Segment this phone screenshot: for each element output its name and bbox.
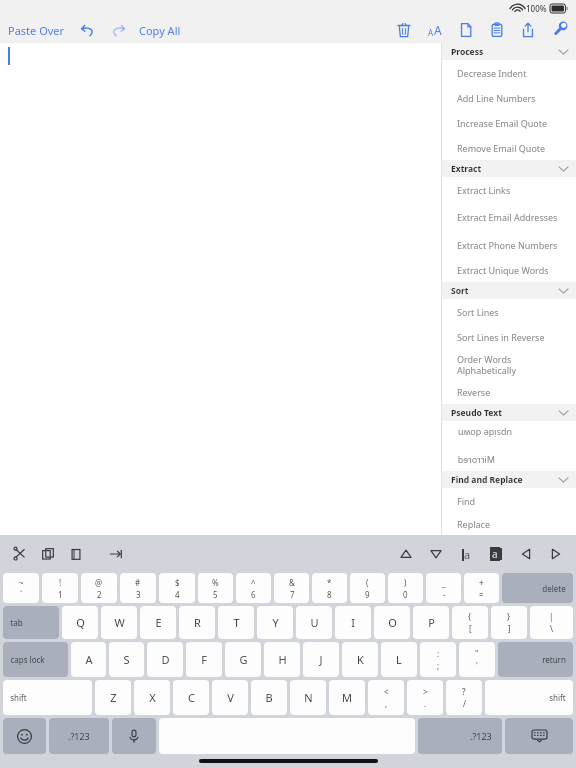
button[interactable]: Settings: [548, 19, 570, 41]
button[interactable]: caps lock: [3, 642, 68, 677]
button[interactable]: T: [218, 606, 254, 639]
button[interactable]: <: [368, 680, 404, 715]
button[interactable]: K: [342, 642, 378, 677]
button[interactable]: ?: [446, 680, 482, 715]
button[interactable]: Extract: [442, 160, 576, 177]
button[interactable]: !: [42, 573, 78, 603]
button[interactable]: %: [198, 573, 233, 603]
button[interactable]: B: [251, 680, 287, 715]
button[interactable]: J: [303, 642, 339, 677]
button[interactable]: Share: [517, 19, 539, 41]
button[interactable]: X: [134, 680, 170, 715]
button[interactable]: ~: [3, 573, 39, 603]
button[interactable]: Q: [62, 606, 98, 639]
button[interactable]: Extract Unique Words: [442, 257, 576, 282]
button[interactable]: Undo: [77, 19, 99, 41]
button[interactable]: I: [335, 606, 371, 639]
button[interactable]: G: [225, 642, 261, 677]
button[interactable]: Order Words Alphabetically: [442, 349, 576, 379]
button[interactable]: upside down: [442, 421, 576, 446]
button[interactable]: }: [491, 606, 527, 639]
button[interactable]: Move right: [546, 544, 566, 564]
button[interactable]: {: [452, 606, 488, 639]
button[interactable]: .?123: [418, 718, 502, 754]
button[interactable]: Process: [442, 43, 576, 60]
button[interactable]: Remove Email Quote: [442, 135, 576, 160]
button[interactable]: M: [329, 680, 365, 715]
button[interactable]: F: [186, 642, 222, 677]
button[interactable]: Dictation: [112, 718, 156, 754]
button[interactable]: Extract Links: [442, 177, 576, 202]
button[interactable]: H: [264, 642, 300, 677]
button[interactable]: (: [350, 573, 385, 603]
button[interactable]: .?123: [49, 718, 109, 754]
button[interactable]: Sort Lines in Reverse: [442, 324, 576, 349]
button[interactable]: Reverse: [442, 379, 576, 404]
button[interactable]: Extract Phone Numbers: [442, 232, 576, 257]
button[interactable]: Z: [95, 680, 131, 715]
button[interactable]: Extract Email Addresses: [442, 202, 576, 232]
button[interactable]: $: [159, 573, 195, 603]
button[interactable]: &: [274, 573, 309, 603]
button[interactable]: Mirrored: [442, 446, 576, 471]
button[interactable]: Cursor before: [456, 544, 476, 564]
button[interactable]: U: [296, 606, 332, 639]
button[interactable]: shift: [3, 680, 92, 715]
button[interactable]: Move up: [396, 544, 416, 564]
button[interactable]: R: [179, 606, 215, 639]
button[interactable]: New document: [455, 19, 477, 41]
button[interactable]: A: [71, 642, 106, 677]
button[interactable]: O: [374, 606, 410, 639]
button[interactable]: *: [312, 573, 347, 603]
button[interactable]: V: [212, 680, 248, 715]
button[interactable]: _: [426, 573, 461, 603]
button[interactable]: D: [147, 642, 183, 677]
button[interactable]: :: [420, 642, 456, 677]
button[interactable]: Sort Lines: [442, 299, 576, 324]
button[interactable]: Pseudo Text: [442, 404, 576, 421]
button[interactable]: Tab: [106, 544, 126, 564]
button[interactable]: tab: [3, 606, 59, 639]
button[interactable]: ": [459, 642, 495, 677]
button[interactable]: return: [498, 642, 573, 677]
button[interactable]: Add Line Numbers: [442, 85, 576, 110]
button[interactable]: ): [388, 573, 423, 603]
button[interactable]: >: [407, 680, 443, 715]
button[interactable]: Decrease Indent: [442, 60, 576, 85]
button[interactable]: P: [413, 606, 449, 639]
button[interactable]: Delete: [393, 19, 415, 41]
button[interactable]: Copy All: [137, 20, 183, 41]
button[interactable]: Text size: [424, 19, 446, 41]
button[interactable]: ^: [236, 573, 271, 603]
button[interactable]: E: [140, 606, 176, 639]
button[interactable]: |: [530, 606, 573, 639]
button[interactable]: Clipboard: [486, 19, 508, 41]
button[interactable]: #: [120, 573, 156, 603]
button[interactable]: Copy: [38, 544, 58, 564]
button[interactable]: Emoji: [3, 718, 46, 754]
button[interactable]: Move down: [426, 544, 446, 564]
button[interactable]: Select character: [486, 544, 506, 564]
button[interactable]: Cut: [10, 544, 30, 564]
button[interactable]: N: [290, 680, 326, 715]
button[interactable]: Replace: [442, 513, 576, 535]
button[interactable]: shift: [485, 680, 573, 715]
button[interactable]: C: [173, 680, 209, 715]
button[interactable]: Hide keyboard: [505, 718, 573, 754]
button[interactable]: delete: [502, 573, 573, 603]
button[interactable]: Find and Replace: [442, 471, 576, 488]
button[interactable]: L: [381, 642, 417, 677]
button[interactable]: W: [101, 606, 137, 639]
button[interactable]: S: [109, 642, 144, 677]
button[interactable]: @: [81, 573, 117, 603]
button[interactable]: Redo: [107, 19, 129, 41]
button[interactable]: +: [464, 573, 499, 603]
button[interactable]: Increase Email Quote: [442, 110, 576, 135]
button[interactable]: Move left: [516, 544, 536, 564]
button[interactable]: Sort: [442, 282, 576, 299]
button[interactable]: Paste: [66, 544, 86, 564]
button[interactable]: Paste Over: [6, 20, 67, 41]
button[interactable]: Find: [442, 488, 576, 513]
button[interactable]: Y: [257, 606, 293, 639]
